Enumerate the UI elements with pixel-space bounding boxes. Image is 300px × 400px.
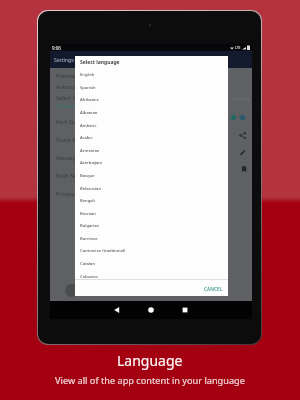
staticText: Language (117, 351, 183, 370)
other: Keyboard (65, 284, 78, 297)
button[interactable]: Push Notifications (50, 166, 252, 184)
staticText: Share data (56, 136, 84, 143)
button[interactable]: Bosnian (75, 207, 228, 220)
button[interactable]: Amharic (75, 119, 228, 132)
button[interactable]: Font Size (50, 112, 252, 130)
staticText: 9:06 (52, 45, 61, 51)
staticText: Preview (1) (56, 72, 84, 79)
button[interactable]: Arabic (75, 131, 228, 144)
staticText: Burmese (80, 236, 98, 242)
button[interactable]: Share data (50, 130, 252, 148)
button[interactable]: Catalan (75, 257, 228, 270)
staticText: Afrikaans (56, 103, 79, 110)
staticText: Settings (54, 56, 74, 63)
button[interactable]: Cebuano (75, 270, 228, 283)
button[interactable]: Cantonese (traditional) (75, 244, 228, 257)
button[interactable]: Bookmark (240, 165, 248, 173)
staticText: Albanian (80, 110, 98, 116)
button[interactable]: English (75, 68, 228, 81)
button[interactable]: Spanish (75, 81, 228, 94)
staticText: Azerbaijani (80, 160, 103, 166)
staticText: Arabic (80, 135, 93, 141)
button[interactable]: CANCEL (204, 286, 228, 296)
staticText: Armenian (80, 148, 100, 154)
staticText: Select language (56, 94, 97, 101)
staticText: Push Notifications (56, 172, 103, 179)
button[interactable]: Preview (1) (50, 70, 252, 81)
button[interactable]: Share (238, 131, 247, 140)
staticText: Basque (80, 173, 95, 179)
staticText: CANCEL (204, 286, 223, 293)
staticText: Catalan (80, 261, 96, 267)
staticText: View all of the app content in your lang… (55, 374, 245, 387)
button[interactable]: Azerbaijani (75, 156, 228, 169)
staticText: Bengali (80, 198, 95, 204)
button[interactable]: Select language (50, 92, 252, 112)
staticText: Privacy Policy (56, 190, 91, 197)
staticText: Afrikaans (80, 97, 99, 103)
staticText: Bosnian (80, 211, 96, 217)
button[interactable]: Autocorrect (50, 81, 252, 92)
staticText: Bulgarian (80, 223, 100, 229)
button[interactable]: Bengali (75, 194, 228, 207)
staticText: LTE (235, 45, 241, 50)
staticText: Message list (56, 154, 88, 161)
staticText: Rate app (233, 96, 251, 102)
staticText: Autocorrect (56, 83, 87, 90)
button[interactable]: Armenian (75, 144, 228, 157)
staticText: Spanish (80, 85, 96, 91)
staticText: Amharic (80, 123, 97, 129)
staticText: Cantonese (traditional) (80, 248, 126, 254)
button[interactable]: Privacy Policy (50, 184, 252, 202)
button[interactable]: Bulgarian (75, 219, 228, 232)
other: Navigation bar (50, 301, 252, 319)
button[interactable]: Belarusian (75, 182, 228, 195)
staticText: Font Size (56, 118, 80, 125)
staticText: Select language (80, 59, 120, 66)
staticText: English (80, 72, 95, 78)
button[interactable]: Afrikaans (75, 93, 228, 106)
button[interactable]: Burmese (75, 232, 228, 245)
staticText: Cebuano (80, 274, 98, 280)
button[interactable]: Message list (50, 148, 252, 166)
staticText: Belarusian (80, 186, 102, 192)
button[interactable]: Albanian (75, 106, 228, 119)
button[interactable]: Edit (238, 148, 247, 157)
button[interactable]: Basque (75, 169, 228, 182)
